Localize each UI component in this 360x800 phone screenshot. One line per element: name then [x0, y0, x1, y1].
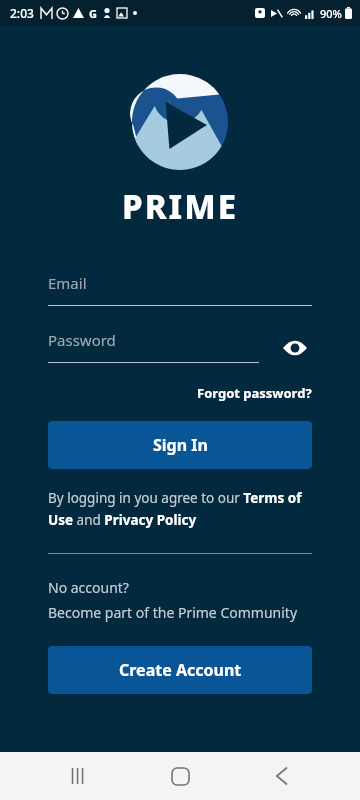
- staticText: No account?: [48, 578, 129, 597]
- staticText: Become part of the Prime Community: [48, 603, 298, 622]
- button[interactable]: Create Account: [48, 646, 312, 694]
- button[interactable]: Password: [48, 330, 259, 363]
- staticText: Create Account: [119, 659, 242, 681]
- staticText: G: [89, 6, 97, 21]
- button[interactable]: Home: [156, 752, 204, 800]
- staticText: 90%: [320, 6, 342, 21]
- button[interactable]: Recent apps: [54, 752, 102, 800]
- staticText: By logging in you agree to our Terms of …: [48, 489, 312, 529]
- staticText: Email: [48, 273, 87, 293]
- button[interactable]: Sign In: [48, 421, 312, 469]
- staticText: Password: [48, 330, 116, 350]
- staticText: 2:03: [10, 5, 34, 21]
- staticText: Sign In: [153, 434, 208, 456]
- staticText: Forgot password?: [197, 384, 312, 402]
- button[interactable]: Email: [48, 273, 312, 306]
- button[interactable]: Show password: [278, 331, 312, 365]
- button[interactable]: Back: [258, 752, 306, 800]
- button[interactable]: Forgot password?: [197, 381, 312, 405]
- staticText: PRIME: [122, 184, 239, 229]
